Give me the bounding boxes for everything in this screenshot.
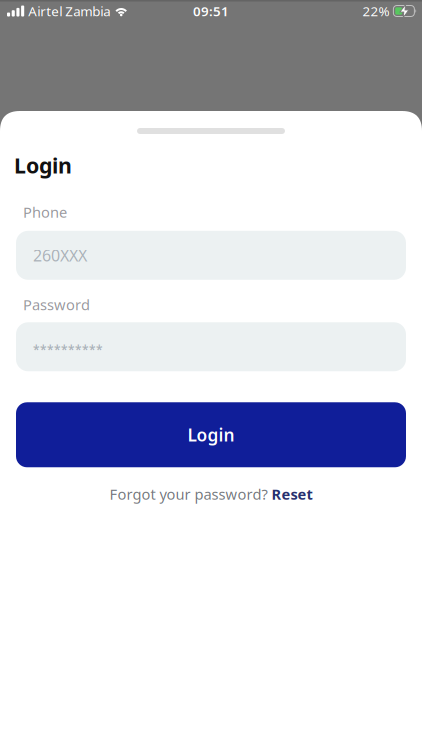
staticText: Login <box>14 151 72 179</box>
staticText: 22% <box>362 2 389 20</box>
staticText: Login <box>187 423 234 446</box>
button[interactable]: Password <box>16 322 406 371</box>
staticText: Reset <box>271 484 312 504</box>
staticText: 260XXX <box>33 245 87 266</box>
staticText: Password <box>23 295 90 314</box>
button[interactable]: Phone <box>16 231 406 280</box>
button[interactable]: Reset <box>271 484 312 504</box>
staticText: Forgot your password? <box>109 484 267 504</box>
staticText: Phone <box>23 202 67 222</box>
staticText: ********** <box>33 342 103 358</box>
button[interactable]: Login <box>16 402 406 467</box>
staticText: Airtel Zambia <box>28 2 110 20</box>
staticText: 09:51 <box>193 2 229 20</box>
